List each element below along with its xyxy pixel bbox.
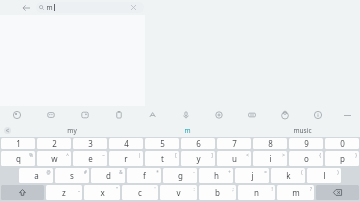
staticText: ] [211,152,213,158]
staticText: e [88,153,93,164]
staticText: v [176,187,181,198]
button[interactable]: Text editing [235,106,268,124]
button[interactable]: my [14,124,130,137]
staticText: { [319,152,321,158]
staticText: a [34,170,39,181]
staticText: r [124,153,128,164]
staticText: j [251,170,254,181]
button[interactable]: m [130,124,245,137]
button[interactable]: f [127,168,161,183]
button[interactable]: Themes [0,106,34,124]
button[interactable]: s [55,168,89,183]
button[interactable]: Translate [136,106,169,124]
button[interactable]: Clear search [128,2,139,13]
button[interactable]: c [122,185,158,200]
button[interactable]: 3 [73,138,107,149]
staticText: u [232,153,237,164]
staticText: ^ [66,152,69,158]
staticText: 9 [304,138,309,149]
button[interactable]: t [145,151,179,166]
button[interactable]: 4 [109,138,143,149]
button[interactable]: More [334,106,360,124]
button[interactable]: r [109,151,143,166]
staticText: n [254,187,259,198]
button[interactable]: e [73,151,107,166]
button[interactable]: q [1,151,35,166]
button[interactable]: m [277,185,314,200]
staticText: 7 [232,138,237,149]
staticText: } [355,152,357,158]
button[interactable]: Shift [1,185,44,200]
button[interactable]: n [238,185,275,200]
button[interactable]: Voice input [169,106,202,124]
staticText: 4 [124,138,129,149]
button[interactable]: j [235,168,269,183]
button[interactable]: h [199,168,233,183]
staticText: + [228,169,231,175]
button[interactable]: 9 [289,138,323,149]
button[interactable]: Collapse suggestions [4,127,11,134]
button[interactable]: k [271,168,305,183]
button[interactable]: Backspace [316,185,359,200]
staticText: l [323,170,326,181]
staticText: z [62,187,66,198]
staticText: m [184,126,191,135]
button[interactable]: 5 [145,138,179,149]
button[interactable]: 7 [217,138,251,149]
staticText: < [246,152,249,158]
staticText: my [67,126,77,135]
staticText: ~ [102,152,105,158]
button[interactable]: o [289,151,323,166]
staticText: ; [232,186,234,192]
staticText: x [100,187,105,198]
button[interactable]: p [325,151,359,166]
staticText: w [51,153,58,164]
staticText: p [340,153,345,164]
staticText: 5 [160,138,165,149]
button[interactable]: x [84,185,120,200]
staticText: % [29,152,33,158]
button[interactable]: Back [19,1,33,15]
staticText: @ [46,169,51,175]
button[interactable]: Info [301,106,334,124]
button[interactable]: i [253,151,287,166]
button[interactable]: d [91,168,125,183]
button[interactable]: Settings [202,106,235,124]
staticText: [ [175,152,177,158]
button[interactable]: m [36,2,144,13]
staticText: _ [78,186,80,192]
button[interactable]: g [163,168,197,183]
staticText: g [178,170,183,181]
button[interactable]: l [307,168,341,183]
button[interactable]: Stickers [34,106,68,124]
button[interactable]: 1 [1,138,35,149]
staticText: : [193,186,195,192]
button[interactable]: z [46,185,82,200]
button[interactable]: y [181,151,215,166]
staticText: 1 [16,138,21,149]
button[interactable]: 2 [37,138,71,149]
staticText: m [292,187,300,198]
staticText: h [214,170,219,181]
button[interactable]: 8 [253,138,287,149]
button[interactable]: Emoji [268,106,301,124]
staticText: 6 [196,138,201,149]
staticText: ? [310,186,312,192]
staticText: ) [337,169,339,175]
staticText: ( [301,169,303,175]
button[interactable]: 0 [325,138,359,149]
button[interactable]: GIF [68,106,102,124]
button[interactable]: b [199,185,236,200]
staticText: 8 [268,138,273,149]
staticText: & [119,169,123,175]
staticText: o [304,153,309,164]
button[interactable]: u [217,151,251,166]
staticText: music [293,126,312,135]
button[interactable]: w [37,151,71,166]
button[interactable]: v [160,185,197,200]
button[interactable]: Clipboard [102,106,136,124]
button[interactable]: music [245,124,360,137]
button[interactable]: 6 [181,138,215,149]
button[interactable]: a [19,168,53,183]
staticText: f [143,170,146,181]
